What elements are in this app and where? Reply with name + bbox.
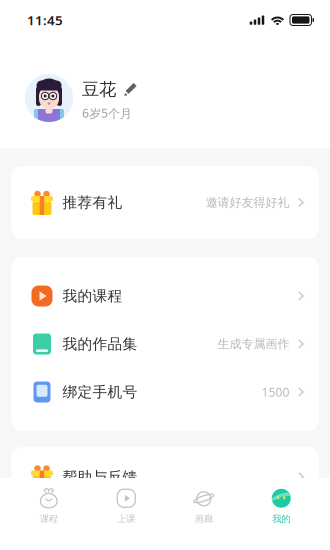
button[interactable]: 帮助与反馈 [11, 447, 318, 507]
staticText: 帮助与反馈 [62, 468, 137, 486]
button[interactable]: 绑定手机号 [11, 368, 318, 416]
button[interactable]: 课程 [10, 478, 87, 534]
button[interactable]: 我的作品集 [11, 320, 318, 368]
staticText: 豆花 [82, 79, 116, 100]
button[interactable]: 画廊 [165, 478, 242, 534]
staticText: 1500 [261, 384, 289, 400]
staticText: 我的课程 [62, 287, 122, 305]
staticText: 6岁5个月 [82, 105, 132, 121]
staticText: 我的作品集 [62, 335, 137, 353]
button[interactable]: 豆花 [0, 32, 330, 148]
staticText: 课程 [40, 513, 58, 525]
button[interactable]: 上课 [87, 478, 165, 534]
button[interactable]: 推荐有礼 [11, 166, 318, 239]
staticText: 上课 [117, 513, 135, 525]
button[interactable]: 我的课程 [11, 272, 318, 320]
staticText: 推荐有礼 [62, 193, 122, 211]
staticText: 生成专属画作 [217, 337, 289, 351]
staticText: 绑定手机号 [62, 383, 137, 401]
button[interactable]: 我的 [242, 478, 320, 534]
staticText: 邀请好友得好礼 [205, 195, 289, 210]
staticText: 画廊 [195, 513, 213, 525]
staticText: 我的 [272, 513, 290, 525]
staticText: 11:45 [27, 11, 63, 29]
